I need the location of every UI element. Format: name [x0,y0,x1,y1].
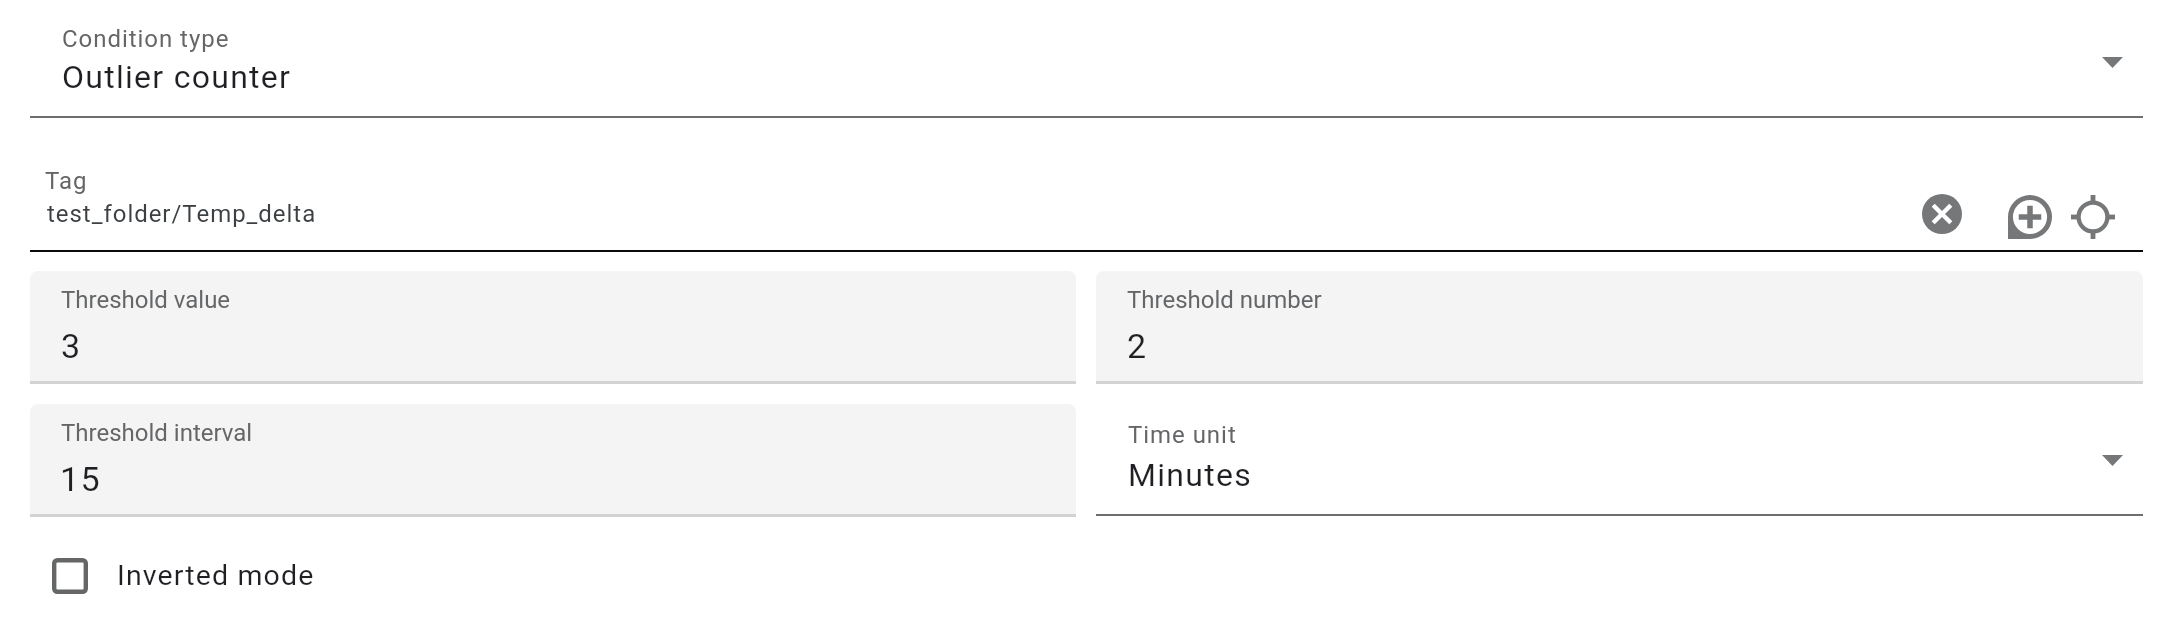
staticText: Condition type [62,25,230,53]
staticText: 15 [60,459,101,499]
staticText: Threshold value [61,286,231,314]
staticText: Threshold interval [61,419,253,447]
staticText: 3 [61,326,82,366]
button[interactable]: Inverted mode [30,543,360,609]
staticText: Minutes [1128,456,1252,494]
button[interactable]: Time unit [1096,404,2143,520]
button[interactable]: Clear tag [1912,184,1972,244]
button[interactable]: Threshold value [30,271,1076,384]
button[interactable]: Threshold number [1096,271,2143,384]
staticText: test_folder/Temp_delta [47,200,317,228]
button[interactable]: Threshold interval [30,404,1076,517]
button[interactable]: Condition type [30,0,2143,118]
staticText: Outlier counter [62,58,292,96]
button[interactable]: Tag [30,130,2143,252]
staticText: Tag [45,167,88,195]
staticText: Threshold number [1127,286,1322,314]
staticText: Inverted mode [117,559,315,592]
staticText: 2 [1127,326,1148,366]
button[interactable]: Add tag [1998,185,2062,249]
button[interactable]: Pick tag [2061,185,2125,249]
staticText: Time unit [1128,421,1237,449]
